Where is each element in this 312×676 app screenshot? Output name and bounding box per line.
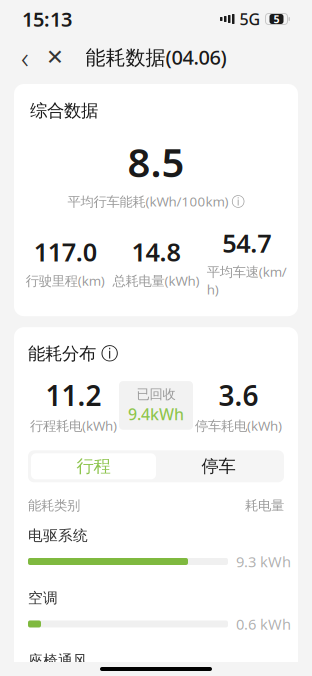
staticText: 117.0 bbox=[34, 235, 97, 269]
staticText: 8.5 bbox=[127, 135, 184, 188]
staticText: 11.2 bbox=[45, 376, 101, 414]
staticText: 总耗电量(kWh) bbox=[112, 272, 199, 289]
staticText: 停车耗电(kWh) bbox=[195, 417, 282, 434]
staticText: 能耗分布 ⓘ bbox=[28, 343, 118, 364]
staticText: ✕ bbox=[46, 45, 64, 69]
staticText: 座椅通风 bbox=[28, 652, 88, 670]
staticText: 9.4kWh bbox=[128, 403, 184, 425]
staticText: 行驶里程(km) bbox=[26, 272, 105, 289]
staticText: 能耗数据(04.06) bbox=[85, 44, 226, 70]
staticText: 平均行车能耗(kWh/100km) ⓘ bbox=[67, 192, 244, 210]
staticText: 5G bbox=[239, 8, 260, 30]
staticText: 耗电量 bbox=[245, 497, 284, 514]
staticText: 平均车速(km/h) bbox=[207, 263, 287, 298]
staticText: 停车 bbox=[201, 456, 235, 477]
button[interactable]: Close bbox=[40, 40, 70, 74]
staticText: 电驱系统 bbox=[28, 527, 88, 545]
staticText: 行程 bbox=[76, 456, 110, 477]
staticText: 0.6 kWh bbox=[236, 614, 291, 634]
button[interactable]: 行程 bbox=[31, 453, 156, 479]
button[interactable]: Back bbox=[10, 40, 40, 74]
staticText: 54.7 bbox=[222, 226, 271, 260]
staticText: 行程耗电(kWh) bbox=[30, 417, 117, 434]
staticText: 5 bbox=[273, 12, 279, 26]
staticText: 能耗类别 bbox=[28, 497, 80, 514]
staticText: 空调 bbox=[28, 589, 58, 607]
staticText: 9.3 kWh bbox=[236, 552, 291, 571]
button[interactable]: 停车 bbox=[156, 453, 281, 479]
staticText: 综合数据 bbox=[30, 100, 98, 121]
staticText: 已回收 bbox=[136, 386, 175, 402]
staticText: 15:13 bbox=[22, 6, 72, 32]
staticText: 3.6 bbox=[218, 376, 258, 414]
staticText: 14.8 bbox=[131, 235, 180, 269]
staticText: ‹ bbox=[21, 37, 29, 76]
